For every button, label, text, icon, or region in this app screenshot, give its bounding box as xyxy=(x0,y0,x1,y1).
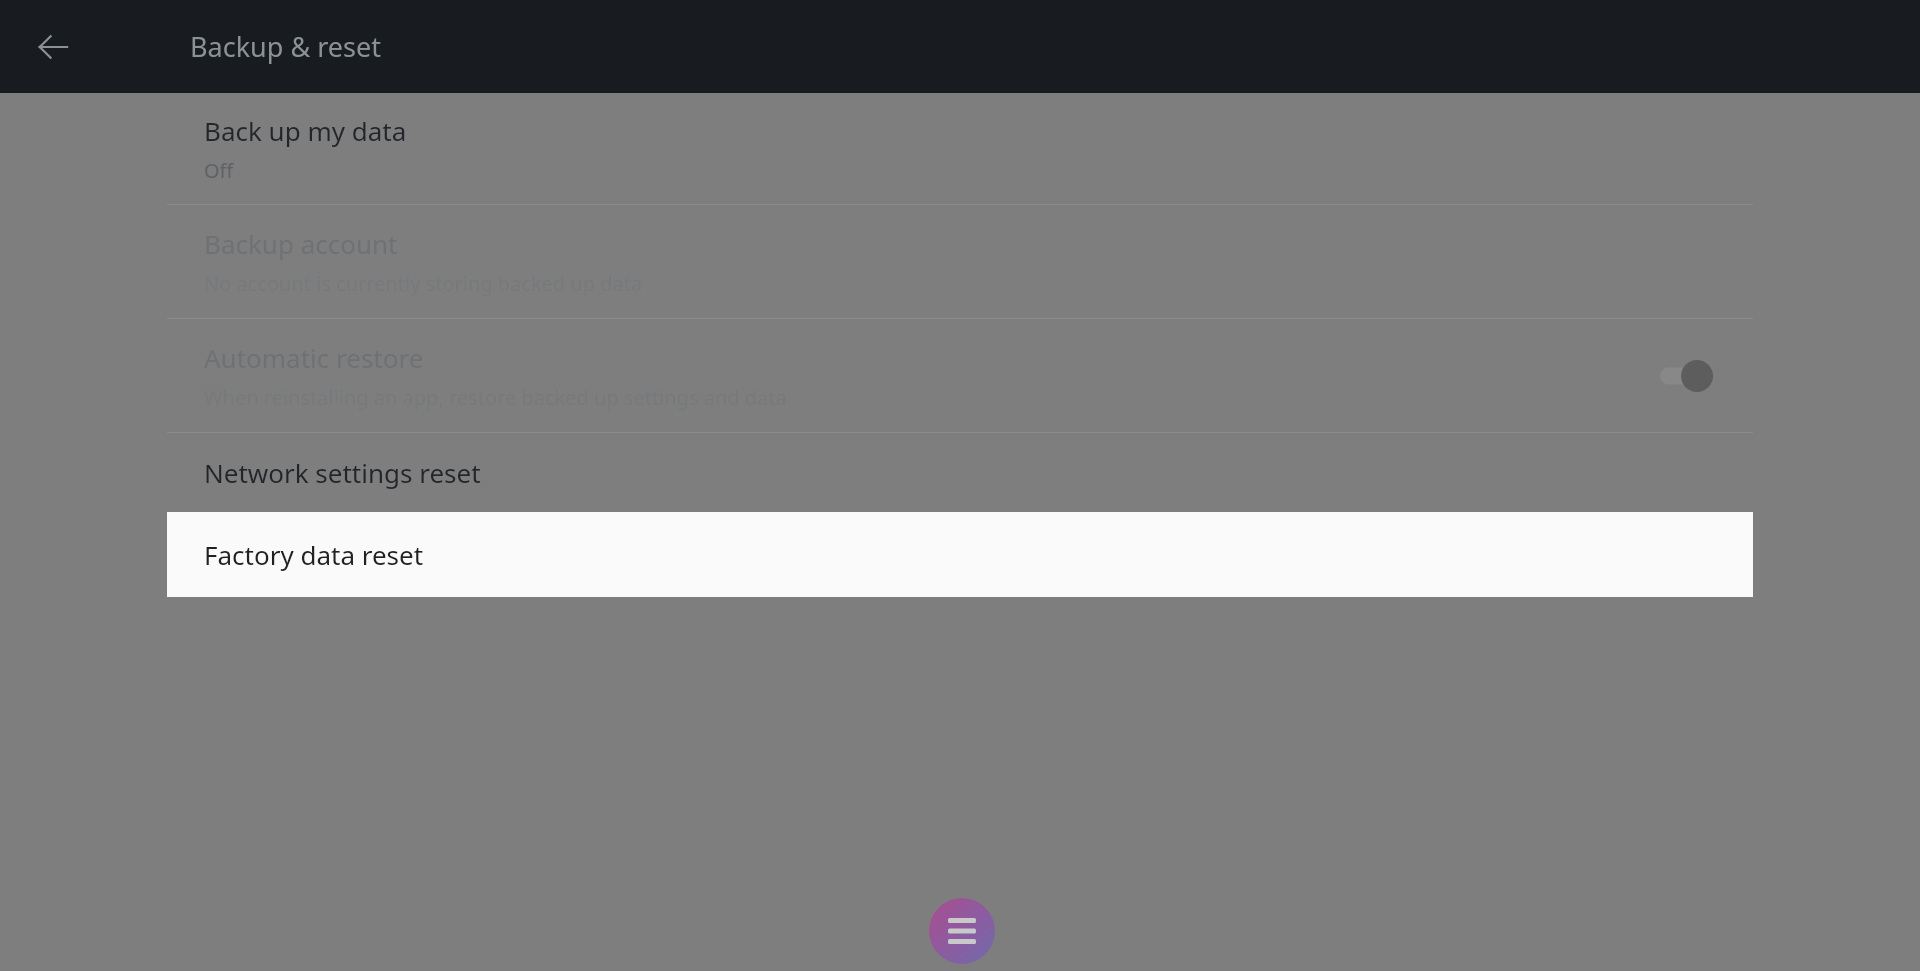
staticText: Factory data reset xyxy=(204,537,424,572)
button[interactable]: Network settings reset xyxy=(0,432,1920,512)
button[interactable]: Menu xyxy=(929,898,995,964)
button[interactable] xyxy=(1650,351,1730,401)
staticText: Off xyxy=(204,157,234,184)
staticText: Back up my data xyxy=(204,113,407,148)
staticText: Automatic restore xyxy=(204,340,424,375)
staticText: Backup account xyxy=(204,226,398,261)
staticText: Backup & reset xyxy=(190,28,381,65)
button[interactable]: Back up my data xyxy=(0,93,1920,204)
button[interactable]: Factory data reset xyxy=(167,512,1753,597)
staticText: Network settings reset xyxy=(204,455,481,490)
button[interactable]: Back xyxy=(17,11,89,83)
